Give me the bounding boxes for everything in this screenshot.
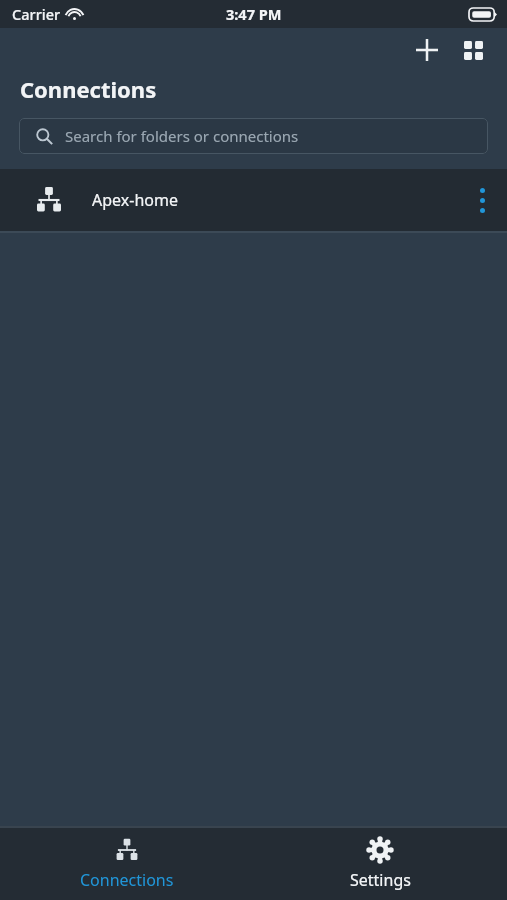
button[interactable]: Search for folders or connections [19,118,488,154]
staticText: Search for folders or connections [65,126,299,146]
button[interactable]: More options [457,169,507,231]
staticText: Carrier [12,4,61,24]
staticText: Settings [350,869,411,891]
staticText: Connections [80,869,174,891]
button[interactable]: Apex-home [0,169,507,231]
button[interactable]: Grid view [453,30,493,70]
staticText: Connections [20,74,157,104]
staticText: 3:47 PM [226,4,282,24]
button[interactable]: Add connection [407,30,447,70]
staticText: Apex-home [92,189,178,211]
button[interactable]: Settings [253,828,507,900]
button[interactable]: Connections [0,828,253,900]
